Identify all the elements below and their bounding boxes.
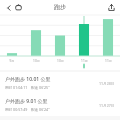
staticText: 配速 06'25": [31, 85, 50, 90]
staticText: 9月: [9, 59, 15, 63]
staticText: 10月: [57, 59, 64, 63]
staticText: 跑步: [54, 3, 66, 11]
staticText: 10月: [33, 59, 40, 63]
staticText: 11月28日: [99, 81, 115, 86]
button[interactable]: 户外跑步 9.01 公里: [0, 94, 120, 116]
staticText: 配速 06'24": [31, 107, 50, 112]
staticText: 户外跑步 9.01 公里: [5, 98, 48, 105]
button[interactable]: Home: [13, 2, 24, 13]
staticText: 用时 00:57:49: [5, 107, 28, 112]
staticText: 11月: [81, 59, 88, 63]
button[interactable]: Back: [3, 2, 14, 13]
staticText: 11月: [105, 59, 112, 63]
staticText: 11月27日: [99, 103, 115, 108]
button[interactable]: Share: [106, 2, 117, 13]
staticText: 用时 01:04:11: [5, 85, 28, 90]
staticText: 户外跑步 10.01 公里: [5, 76, 51, 83]
button[interactable]: 户外跑步 10.01 公里: [0, 72, 120, 94]
